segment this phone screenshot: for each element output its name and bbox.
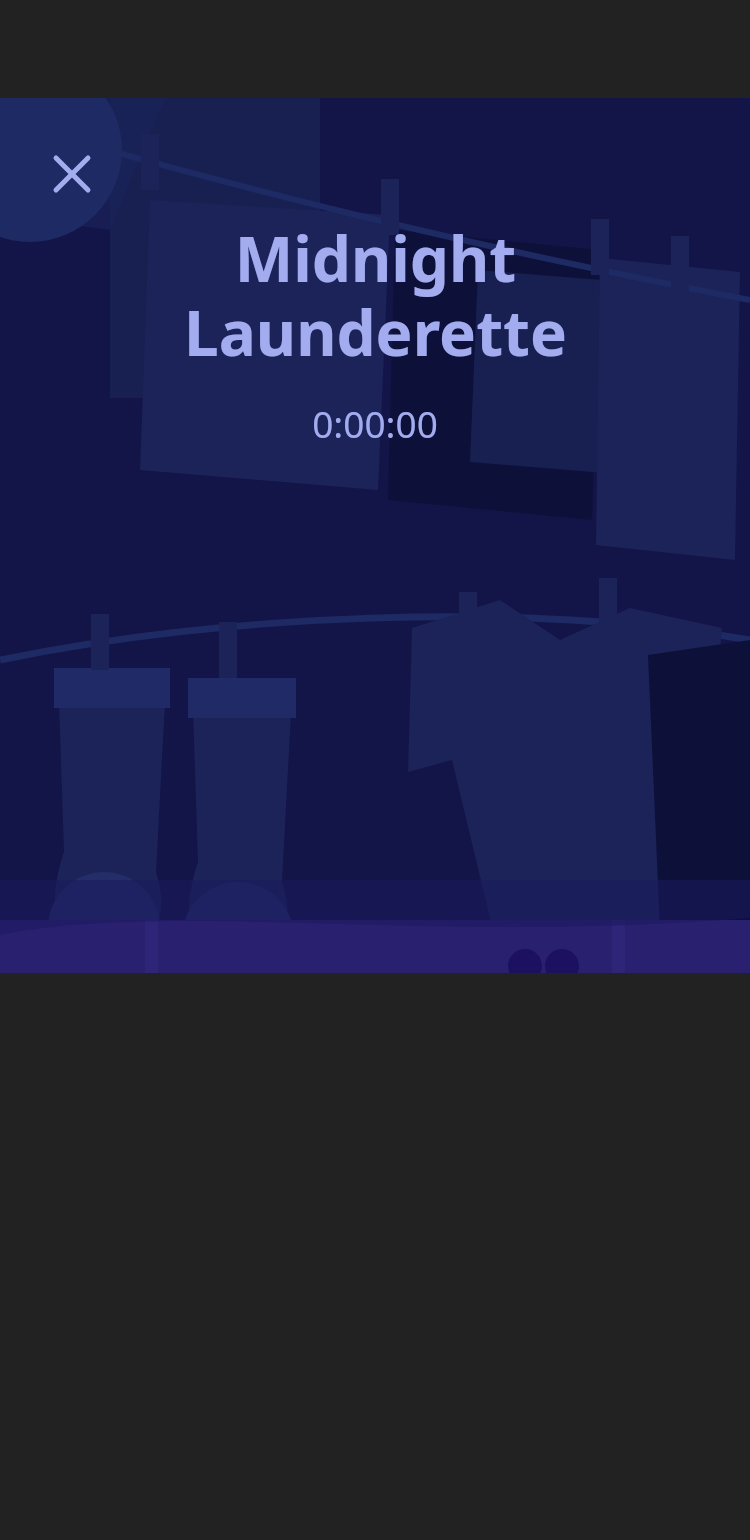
- button[interactable]: Close: [40, 142, 104, 206]
- staticText: Midnight Launderette: [184, 216, 567, 374]
- staticText: 0:00:00: [312, 398, 438, 448]
